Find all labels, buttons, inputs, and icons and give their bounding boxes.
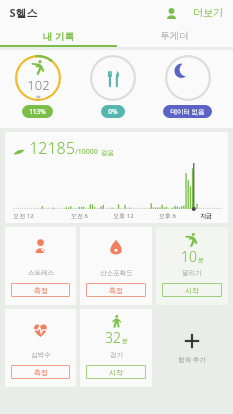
staticText: 오후 6 <box>159 212 176 220</box>
button[interactable]: 데이터 없음 <box>150 54 225 118</box>
button[interactable]: 내 기록 <box>0 25 116 47</box>
staticText: 지금 <box>200 212 212 220</box>
button[interactable]: 측정 <box>11 365 70 379</box>
staticText: 걷기 <box>110 351 123 359</box>
staticText: /10000 <box>75 147 98 157</box>
staticText: 심박수 <box>31 351 51 359</box>
staticText: 0% <box>108 107 118 116</box>
staticText: 투게더 <box>160 30 189 42</box>
button[interactable]: Profile <box>161 3 181 23</box>
staticText: 측정 <box>34 286 48 295</box>
staticText: 12185 <box>29 137 75 159</box>
staticText: 32 <box>105 328 121 347</box>
staticText: 더보기 <box>193 6 223 19</box>
button[interactable]: 측정 <box>86 283 146 297</box>
staticText: 걸음 <box>101 149 114 157</box>
button[interactable]: 시작 <box>86 365 146 379</box>
staticText: 스트레스 <box>28 269 54 277</box>
staticText: 오후 12 <box>113 212 134 220</box>
staticText: 102 <box>27 76 50 94</box>
button[interactable]: 12185 <box>5 132 228 223</box>
staticText: 10 <box>181 247 197 266</box>
staticText: 분 <box>36 94 41 100</box>
button[interactable]: 투게더 <box>116 25 233 47</box>
staticText: 데이터 없음 <box>170 107 205 116</box>
staticText: S헬스 <box>9 5 38 20</box>
staticText: 오전 12 <box>13 212 34 220</box>
button[interactable]: 항목 추가 <box>156 309 228 387</box>
button[interactable]: 시작 <box>162 283 222 297</box>
staticText: 달리기 <box>182 269 202 277</box>
button[interactable]: 102 <box>0 54 75 118</box>
other: 항목 추가 <box>183 332 201 350</box>
staticText: 시작 <box>185 286 199 295</box>
staticText: 분 <box>122 337 128 345</box>
button[interactable]: 10 <box>156 227 228 305</box>
button[interactable]: 32 <box>80 309 152 387</box>
button[interactable]: 더보기 <box>191 2 225 23</box>
staticText: 시작 <box>109 368 123 377</box>
staticText: 측정 <box>109 286 123 295</box>
staticText: 측정 <box>34 368 48 377</box>
button[interactable]: 심박수 <box>5 309 76 387</box>
staticText: 항목 추가 <box>178 355 206 364</box>
staticText: 내 기록 <box>43 30 74 43</box>
staticText: 오전 6 <box>71 212 88 220</box>
staticText: 113% <box>29 107 46 116</box>
staticText: 산소포화도 <box>100 269 133 277</box>
button[interactable]: 산소포화도 <box>80 227 152 305</box>
button[interactable]: 스트레스 <box>5 227 76 305</box>
button[interactable]: 측정 <box>11 283 70 297</box>
staticText: 분 <box>198 256 204 264</box>
button[interactable]: 0% <box>75 54 150 118</box>
